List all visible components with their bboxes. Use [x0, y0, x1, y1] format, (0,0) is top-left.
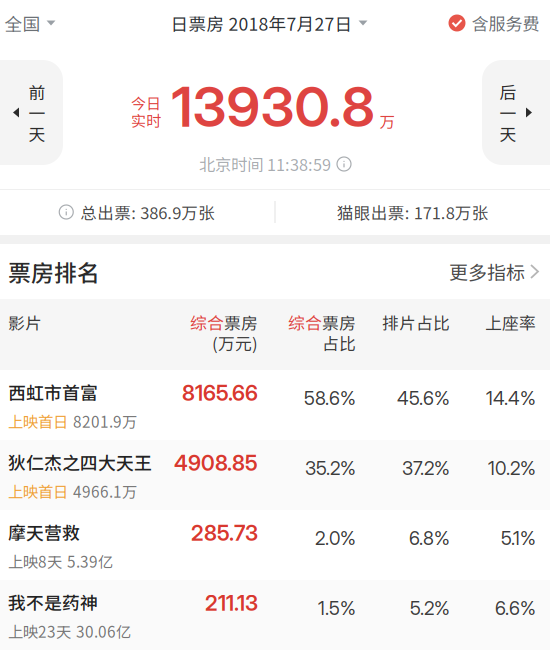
staticText: 上映首日 — [8, 480, 68, 502]
staticText: 211.13 — [205, 590, 258, 616]
button[interactable]: 前 — [0, 60, 63, 165]
staticText: 14.4% — [486, 387, 536, 410]
staticText: 实时 — [131, 109, 161, 131]
staticText: (万元) — [212, 331, 258, 355]
staticText: 10.2% — [488, 457, 536, 480]
button[interactable]: 摩天营救 — [0, 510, 550, 580]
staticText: 总出票: 386.9万张 — [80, 200, 215, 224]
staticText: 摩天营救 — [8, 519, 80, 545]
staticText: 前 — [28, 80, 45, 104]
staticText: 票房 — [224, 310, 258, 334]
staticText: 35.2% — [305, 457, 356, 480]
staticText: 5.39亿 — [67, 550, 113, 572]
staticText: 1.5% — [318, 597, 356, 620]
staticText: 更多指标 — [449, 258, 525, 285]
staticText: 含服务费 — [471, 11, 539, 35]
staticText: 占比 — [322, 331, 356, 355]
staticText: 狄仁杰之四大天王 — [8, 449, 152, 475]
button[interactable]: 含服务费 — [448, 0, 539, 46]
staticText: 排片占比 — [382, 310, 450, 334]
staticText: 45.6% — [397, 387, 450, 410]
staticText: 一 — [499, 100, 516, 125]
staticText: 西虹市首富 — [8, 379, 98, 405]
staticText: 日票房 2018年7月27日 — [170, 10, 352, 36]
staticText: 13930.8 — [171, 73, 374, 140]
staticText: 综合 — [288, 310, 322, 334]
staticText: 万 — [379, 110, 394, 132]
button[interactable]: 全国 — [0, 0, 60, 46]
staticText: 6.8% — [409, 527, 450, 550]
button[interactable]: 更多指标 — [449, 244, 538, 299]
staticText: 285.73 — [191, 520, 258, 546]
button[interactable]: 狄仁杰之四大天王 — [0, 440, 550, 510]
staticText: 58.6% — [304, 387, 356, 410]
staticText: 2.0% — [315, 527, 356, 550]
staticText: 天 — [499, 121, 516, 145]
staticText: 北京时间 11:38:59 — [199, 152, 331, 176]
staticText: 30.06亿 — [76, 620, 131, 642]
staticText: 后 — [499, 80, 516, 104]
staticText: 上映23天 — [8, 620, 71, 642]
staticText: 天 — [28, 121, 45, 145]
staticText: 票房 — [322, 310, 356, 334]
staticText: 8165.66 — [182, 380, 258, 406]
staticText: 我不是药神 — [8, 589, 98, 615]
staticText: 综合 — [190, 310, 224, 334]
staticText: 上映8天 — [8, 550, 62, 572]
staticText: 37.2% — [402, 457, 450, 480]
staticText: 票房排名 — [8, 255, 100, 288]
staticText: 6.6% — [495, 597, 536, 620]
staticText: 猫眼出票: 171.8万张 — [337, 200, 489, 224]
staticText: 8201.9万 — [73, 410, 137, 432]
staticText: 5.2% — [410, 597, 450, 620]
staticText: 4966.1万 — [73, 480, 137, 502]
staticText: 上映首日 — [8, 410, 68, 432]
staticText: 上座率 — [485, 310, 536, 334]
button[interactable]: 西虹市首富 — [0, 370, 550, 440]
staticText: 一 — [28, 100, 45, 125]
staticText: 4908.85 — [174, 450, 258, 476]
button[interactable]: 后 — [482, 60, 550, 165]
staticText: 影片 — [8, 310, 42, 334]
button[interactable]: 我不是药神 — [0, 580, 550, 650]
staticText: 全国 — [4, 10, 40, 36]
staticText: 5.1% — [501, 527, 536, 550]
staticText: 今日 — [131, 92, 161, 114]
button[interactable]: 日票房 2018年7月27日 — [170, 0, 367, 46]
